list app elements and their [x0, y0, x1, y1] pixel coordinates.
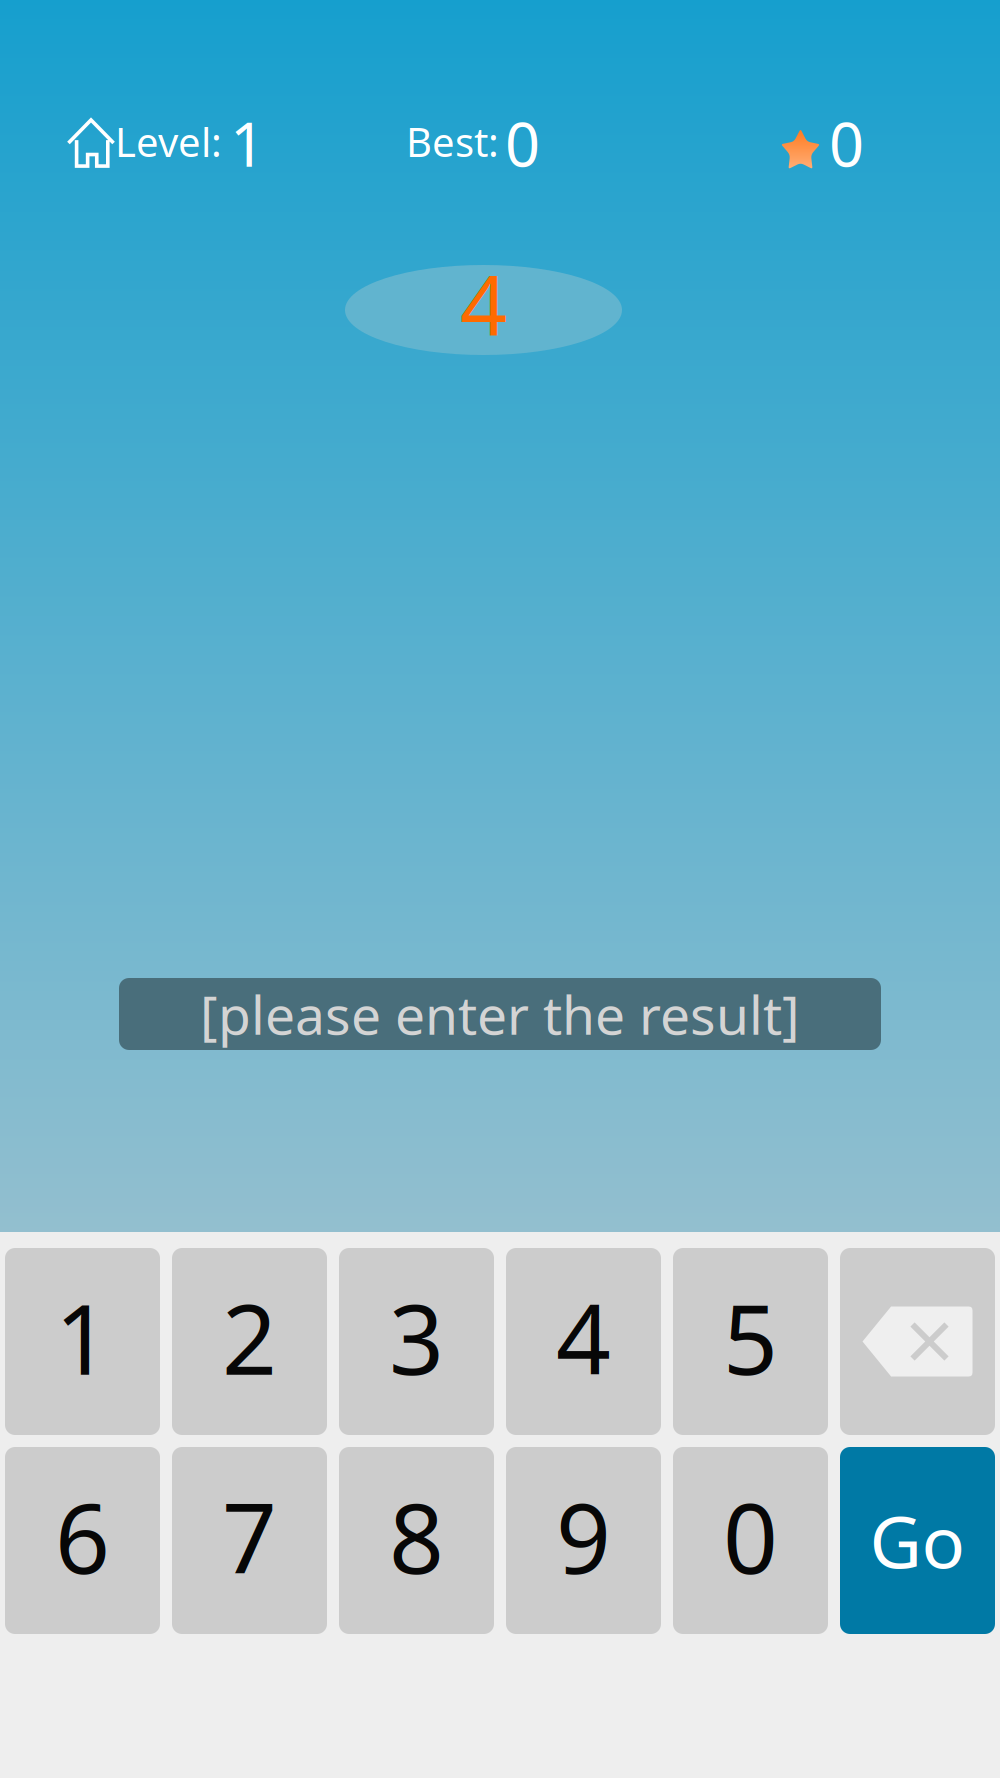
staticText: 6 — [55, 1473, 110, 1600]
button[interactable]: [please enter the result] — [119, 978, 881, 1050]
staticText: 7 — [222, 1473, 277, 1600]
button[interactable]: 4 — [506, 1248, 661, 1435]
staticText: 5 — [723, 1274, 778, 1401]
staticText: 1 — [55, 1274, 110, 1401]
staticText: 4 — [460, 248, 507, 358]
button[interactable]: 2 — [172, 1248, 327, 1435]
button[interactable]: 7 — [172, 1447, 327, 1634]
staticText: 4 — [556, 1274, 611, 1401]
staticText: 1 — [230, 102, 265, 184]
button[interactable]: Delete — [840, 1248, 995, 1435]
staticText: 3 — [389, 1274, 444, 1401]
staticText: Level: — [115, 115, 222, 168]
button[interactable]: Home, Level 1 — [67, 113, 265, 173]
button[interactable]: 9 — [506, 1447, 661, 1634]
staticText: 0 — [723, 1473, 778, 1600]
button[interactable]: Go — [840, 1447, 995, 1634]
staticText: 9 — [556, 1473, 611, 1600]
staticText: 8 — [389, 1473, 444, 1600]
button[interactable]: 1 — [5, 1248, 160, 1435]
staticText: Best: — [406, 115, 499, 168]
staticText: 0 — [505, 102, 540, 184]
staticText: [please enter the result] — [200, 979, 800, 1049]
button[interactable]: 5 — [673, 1248, 828, 1435]
staticText: Go — [869, 1493, 965, 1588]
button[interactable]: 6 — [5, 1447, 160, 1634]
button[interactable]: 8 — [339, 1447, 494, 1634]
button[interactable]: 0 — [673, 1447, 828, 1634]
staticText: 2 — [222, 1274, 277, 1401]
staticText: 0 — [829, 102, 864, 184]
button[interactable]: 3 — [339, 1248, 494, 1435]
